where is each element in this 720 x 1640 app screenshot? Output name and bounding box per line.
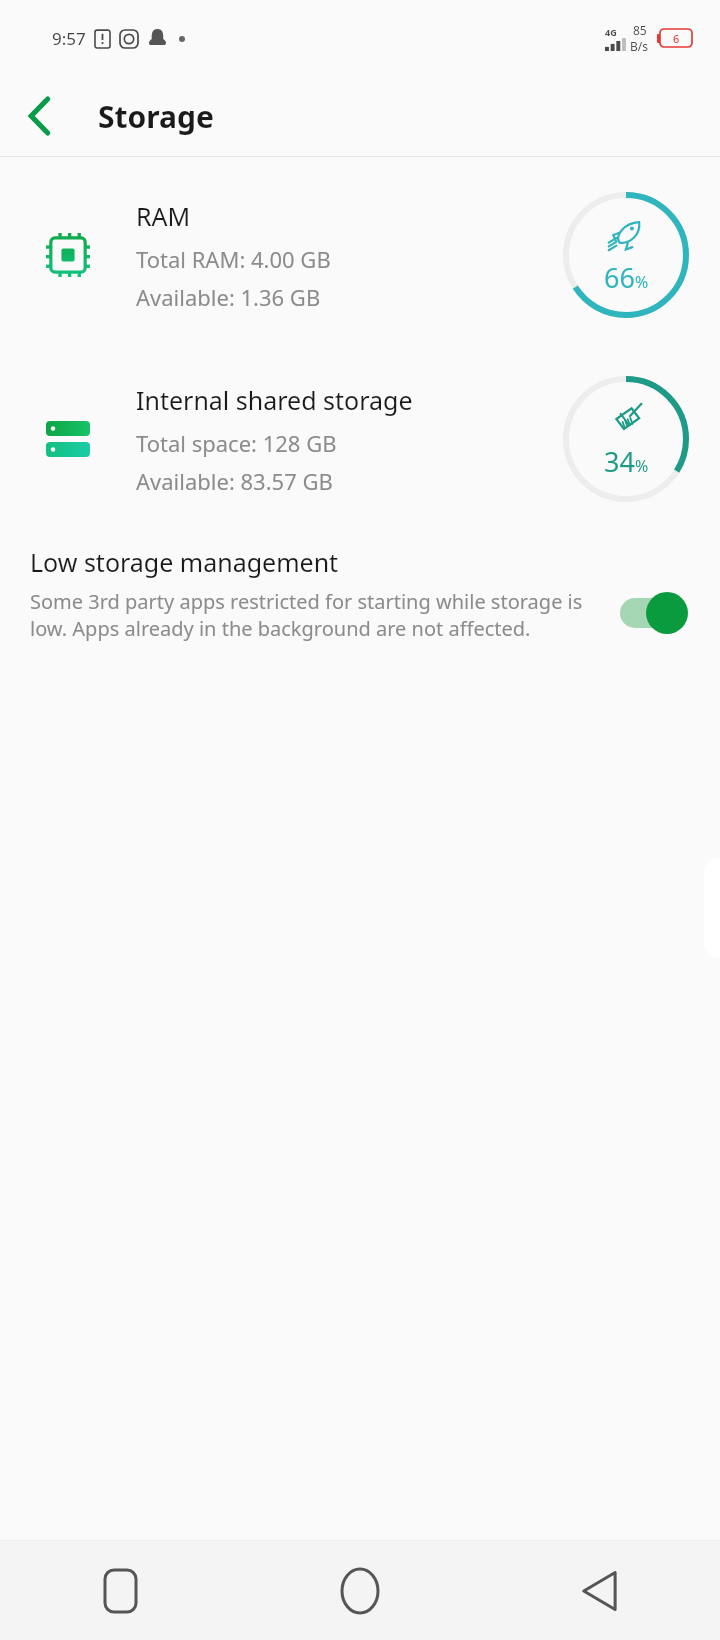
- staticText: Internal shared storage: [136, 383, 413, 417]
- staticText: Available: 1.36 GB: [136, 282, 321, 312]
- button[interactable]: Back: [480, 1541, 720, 1640]
- staticText: 34: [604, 443, 635, 480]
- staticText: Available: 83.57 GB: [136, 466, 333, 496]
- staticText: Low storage management: [30, 545, 339, 579]
- staticText: B/s: [630, 38, 649, 54]
- button[interactable]: RAM: [0, 171, 720, 339]
- button[interactable]: Recent apps: [0, 1541, 240, 1640]
- staticText: RAM: [136, 199, 191, 233]
- staticText: 66: [604, 259, 635, 296]
- staticText: 6: [673, 31, 680, 46]
- button[interactable]: Back: [12, 88, 68, 144]
- staticText: Total RAM: 4.00 GB: [136, 244, 331, 274]
- button[interactable]: Internal shared storage: [0, 355, 720, 523]
- staticText: 9:57: [52, 27, 86, 50]
- staticText: 85: [633, 22, 647, 38]
- button[interactable]: Low storage management: [0, 535, 720, 654]
- staticText: Storage: [98, 96, 214, 137]
- button[interactable]: Home: [240, 1541, 480, 1640]
- staticText: Some 3rd party apps restricted for start…: [30, 588, 604, 642]
- staticText: Total space: 128 GB: [136, 428, 337, 458]
- staticText: %: [635, 271, 649, 293]
- staticText: 4G: [605, 26, 617, 38]
- staticText: %: [635, 455, 649, 477]
